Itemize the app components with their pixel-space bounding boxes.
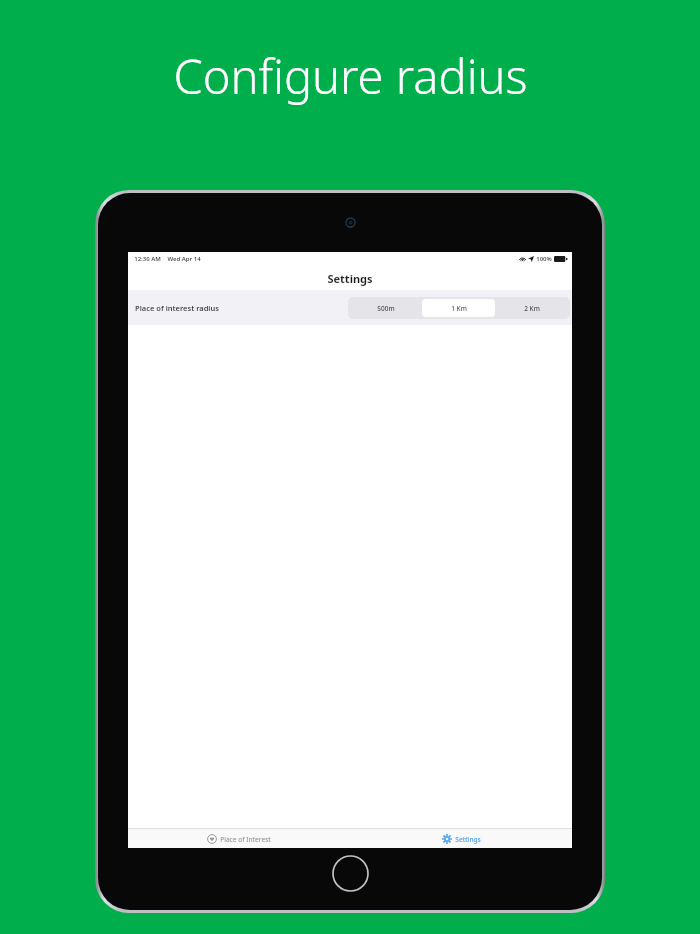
button[interactable]: Settings bbox=[438, 832, 485, 846]
staticText: 100% bbox=[536, 255, 552, 263]
staticText: Settings bbox=[455, 835, 481, 844]
button[interactable]: Place of interest radius bbox=[128, 290, 572, 325]
other: Home bbox=[332, 855, 369, 892]
staticText: 12:30 AM bbox=[134, 255, 161, 263]
button[interactable]: 500m bbox=[350, 299, 422, 317]
staticText: 1 Km bbox=[451, 304, 467, 313]
staticText: 500m bbox=[377, 304, 395, 313]
staticText: Place of interest radius bbox=[135, 303, 219, 313]
staticText: Settings bbox=[327, 271, 373, 286]
other: Settings bbox=[442, 834, 452, 844]
other: Place of Interest bbox=[207, 834, 217, 844]
button[interactable]: 1 Km bbox=[422, 299, 495, 317]
staticText: Wed Apr 14 bbox=[167, 255, 201, 263]
button[interactable]: Place of Interest bbox=[203, 832, 275, 846]
staticText: Configure radius bbox=[173, 44, 528, 108]
staticText: 2 Km bbox=[524, 304, 540, 313]
staticText: Place of Interest bbox=[220, 835, 271, 844]
button[interactable]: 2 Km bbox=[495, 299, 568, 317]
